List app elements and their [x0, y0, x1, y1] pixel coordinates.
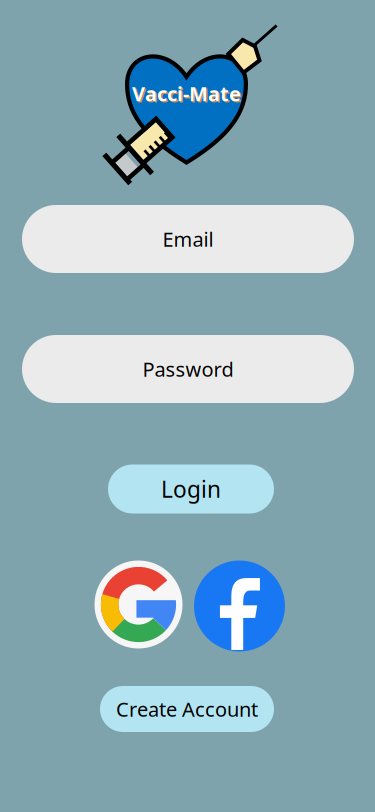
button[interactable]: Create Account — [100, 686, 274, 732]
staticText: Vacci-Mate — [133, 81, 242, 108]
button[interactable]: Email — [22, 205, 354, 273]
button[interactable]: Login — [108, 464, 274, 513]
button[interactable]: Password — [22, 335, 354, 403]
staticText: Login — [161, 474, 221, 504]
staticText: Create Account — [116, 696, 258, 722]
staticText: Vacci-Mate — [132, 80, 241, 107]
button[interactable]: Sign in with Facebook — [194, 560, 285, 651]
button[interactable]: Sign in with Google — [94, 560, 182, 648]
staticText: Password — [142, 356, 233, 382]
staticText: Email — [162, 226, 213, 252]
